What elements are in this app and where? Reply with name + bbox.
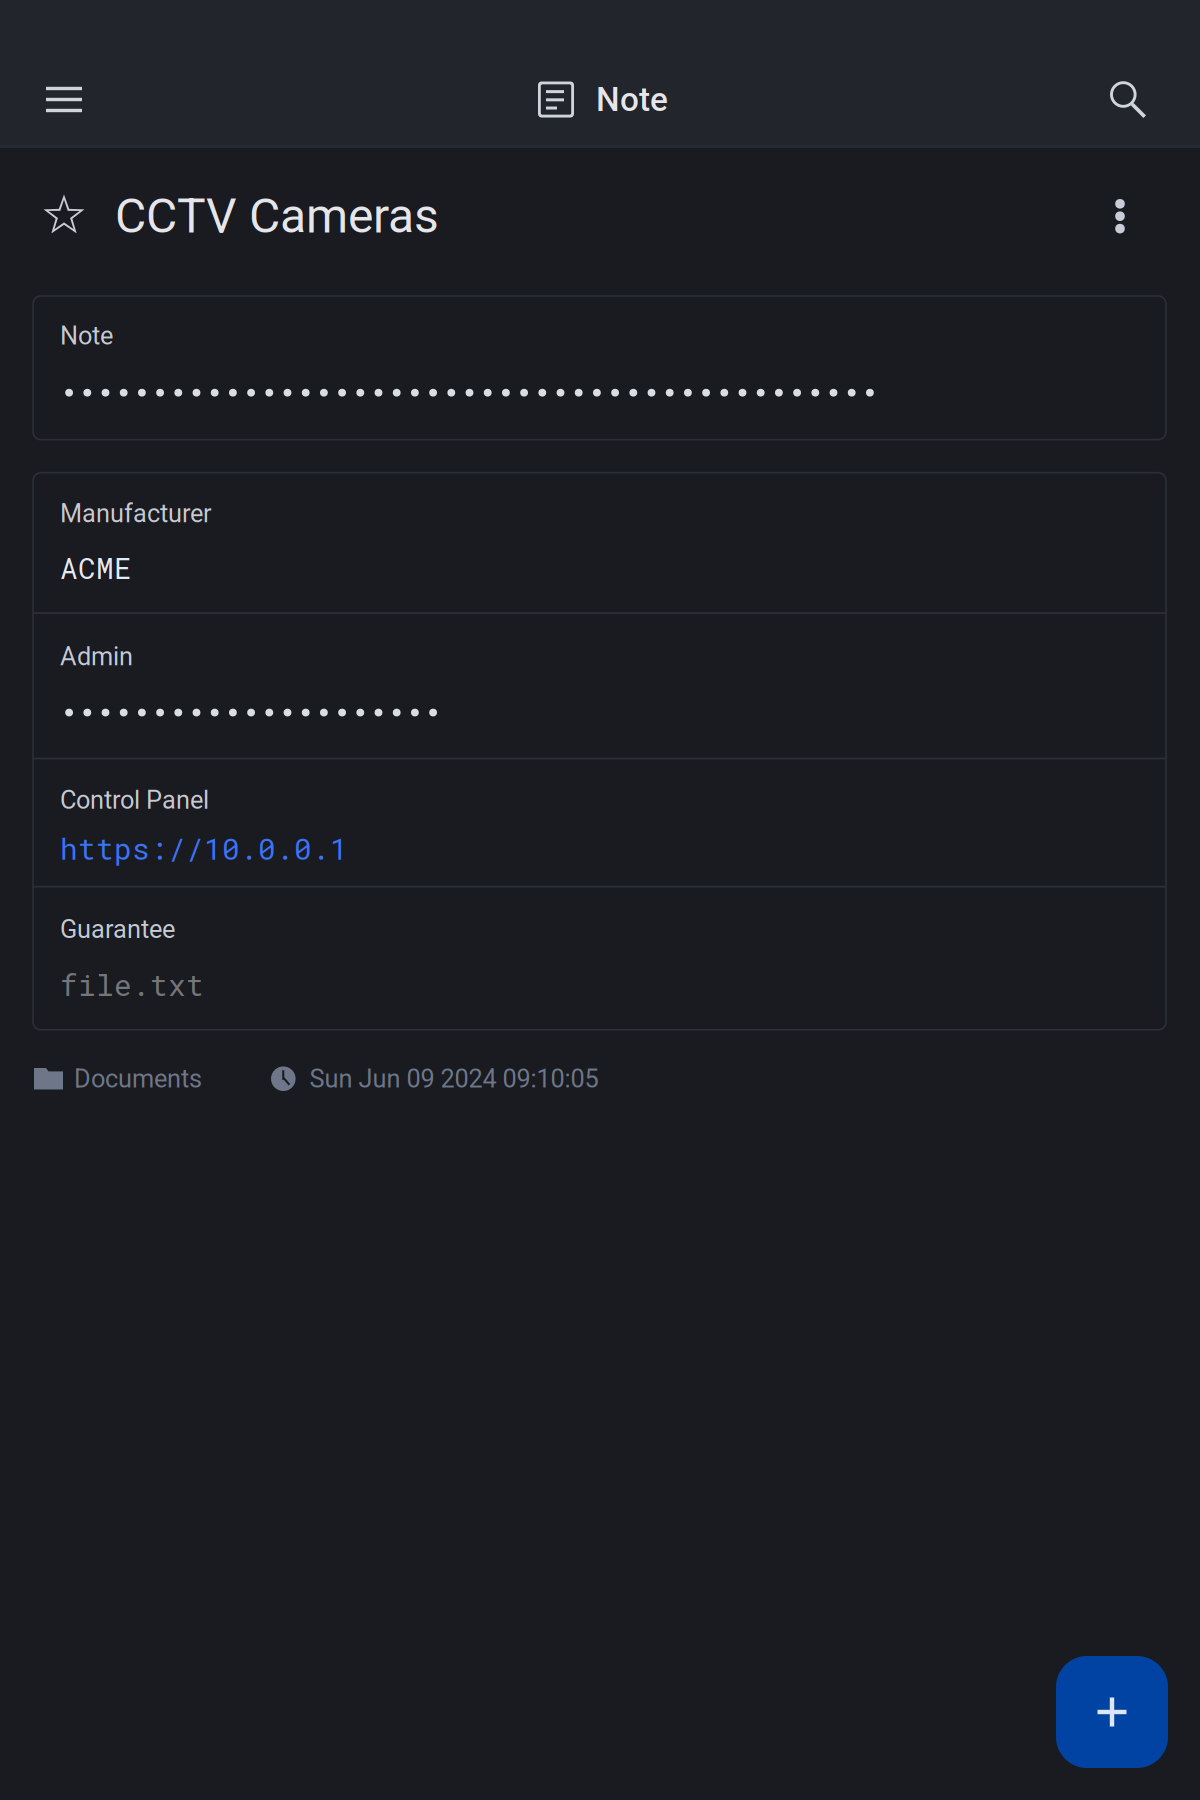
staticText: https://10.0.0.1 [60, 829, 348, 868]
button[interactable]: Search [1086, 51, 1170, 148]
staticText: file.txt [60, 965, 204, 1004]
staticText: Manufacturer [60, 499, 212, 528]
staticText: Sun Jun 09 2024 09:10:05 [310, 1064, 599, 1094]
staticText: CCTV Cameras [115, 188, 439, 244]
staticText: Control Panel [60, 785, 209, 815]
button[interactable]: Favourite [35, 186, 93, 246]
button[interactable]: Menu [22, 51, 106, 148]
staticText: ACME [60, 548, 132, 587]
staticText: Guarantee [60, 914, 175, 944]
staticText: Note [60, 321, 113, 351]
staticText: Note [596, 80, 668, 119]
button[interactable]: Add [1056, 1656, 1168, 1768]
button[interactable]: More options [1091, 186, 1149, 246]
staticText: Admin [60, 642, 133, 672]
staticText: Documents [74, 1064, 202, 1094]
